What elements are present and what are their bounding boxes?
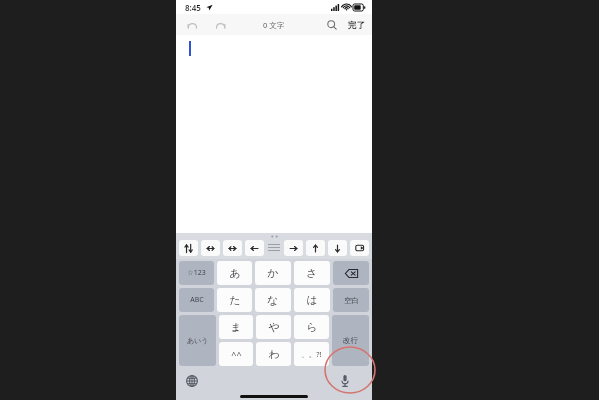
button[interactable]: ☆123 bbox=[179, 261, 214, 285]
button[interactable]: Back bbox=[245, 240, 264, 256]
staticText: あいう bbox=[187, 336, 209, 345]
button[interactable]: わ bbox=[256, 342, 291, 366]
button[interactable]: Delete bbox=[333, 261, 369, 285]
button[interactable]: な bbox=[255, 288, 291, 312]
button[interactable]: ら bbox=[294, 315, 329, 339]
staticText: ☆123 bbox=[187, 268, 206, 278]
button[interactable]: Forward bbox=[284, 240, 303, 256]
button[interactable]: あいう bbox=[179, 315, 216, 366]
button[interactable]: ^^ bbox=[219, 342, 253, 366]
staticText: 空白 bbox=[344, 296, 359, 305]
button[interactable]: Search bbox=[325, 18, 339, 32]
button[interactable]: 、。?! bbox=[294, 342, 329, 366]
staticText: あ bbox=[229, 266, 241, 280]
staticText: か bbox=[267, 266, 279, 280]
button[interactable]: た bbox=[217, 288, 252, 312]
button[interactable]: Dictation bbox=[337, 373, 353, 389]
staticText: ^^ bbox=[231, 348, 242, 360]
button[interactable]: Up bbox=[306, 240, 325, 256]
button[interactable]: Change keyboard bbox=[184, 373, 200, 389]
button[interactable]: 改行 bbox=[332, 315, 369, 366]
button[interactable]: は bbox=[294, 288, 330, 312]
staticText: ら bbox=[306, 320, 318, 334]
button[interactable]: Hide keyboard bbox=[350, 240, 369, 256]
button[interactable]: Redo bbox=[213, 18, 227, 32]
button[interactable]: 完了 bbox=[348, 20, 365, 31]
button[interactable]: あ bbox=[217, 261, 252, 285]
button[interactable]: 空白 bbox=[333, 288, 369, 312]
button[interactable]: や bbox=[256, 315, 291, 339]
staticText: 改行 bbox=[343, 336, 358, 345]
staticText: 、。?! bbox=[301, 349, 322, 359]
staticText: た bbox=[229, 293, 241, 307]
button[interactable]: か bbox=[255, 261, 291, 285]
button[interactable]: ABC bbox=[179, 288, 214, 312]
button[interactable]: Undo bbox=[185, 18, 199, 32]
button[interactable]: ま bbox=[219, 315, 253, 339]
staticText: は bbox=[306, 293, 318, 307]
staticText: わ bbox=[268, 347, 280, 361]
button[interactable]: Down bbox=[328, 240, 347, 256]
staticText: 8:45 bbox=[185, 2, 201, 13]
staticText: や bbox=[268, 320, 280, 334]
staticText: ABC bbox=[190, 295, 204, 305]
button[interactable]: さ bbox=[294, 261, 330, 285]
staticText: 0 文字 bbox=[263, 20, 285, 30]
staticText: 完了 bbox=[348, 20, 365, 31]
staticText: な bbox=[267, 293, 279, 307]
staticText: ま bbox=[230, 320, 242, 334]
staticText: さ bbox=[306, 266, 318, 280]
button[interactable]: Convert bbox=[179, 240, 198, 256]
button[interactable]: Move left bbox=[201, 240, 220, 256]
button[interactable]: Move right bbox=[223, 240, 242, 256]
